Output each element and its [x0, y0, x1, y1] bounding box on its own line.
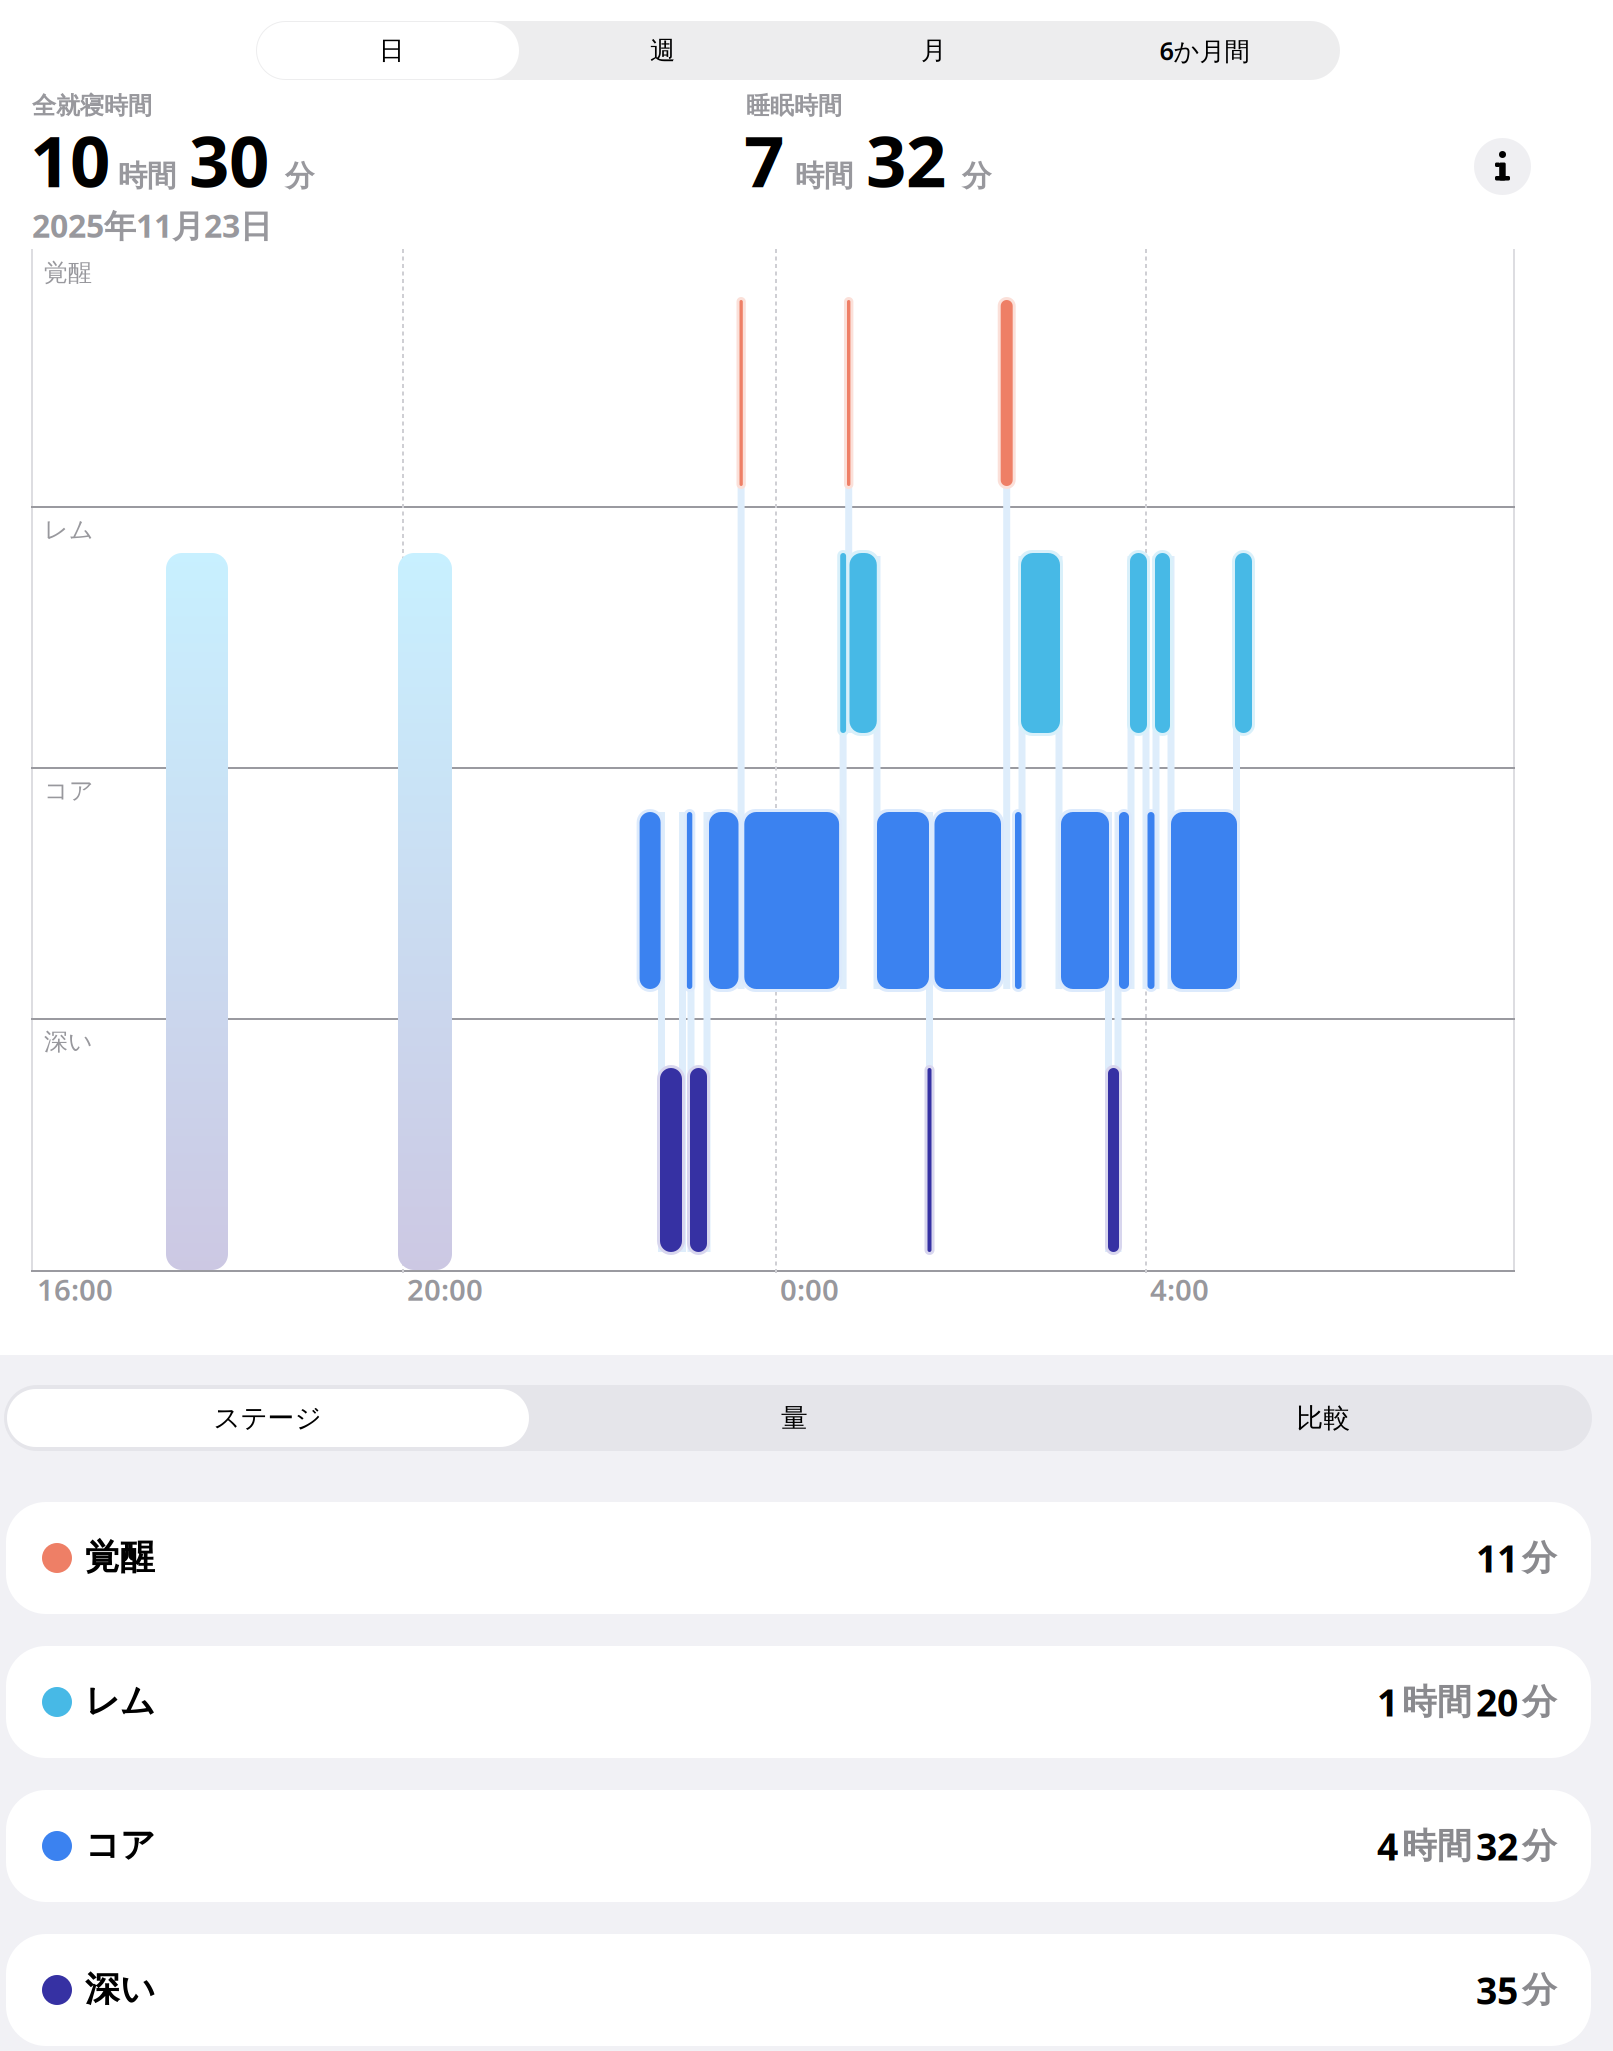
staticText: レム — [85, 1680, 155, 1723]
button[interactable]: 量 — [530, 1385, 1059, 1451]
staticText: 32 — [1476, 1821, 1518, 1871]
staticText: 睡眠時間 — [746, 91, 842, 120]
button[interactable]: 月 — [798, 21, 1069, 80]
staticText: 時間 — [1402, 1825, 1472, 1867]
staticText: 時間 — [795, 158, 853, 194]
staticText: 分 — [1522, 1537, 1557, 1579]
staticText: 4 — [1377, 1821, 1398, 1871]
button[interactable]: レム — [6, 1646, 1591, 1758]
staticText: 日 — [379, 35, 404, 66]
staticText: ステージ — [213, 1402, 321, 1434]
staticText: 0:00 — [780, 1270, 839, 1309]
staticText: 20 — [1476, 1677, 1518, 1727]
staticText: 16:00 — [37, 1270, 113, 1309]
button[interactable]: 週 — [527, 21, 798, 80]
staticText: 時間 — [1402, 1681, 1472, 1723]
staticText: 11 — [1476, 1533, 1518, 1583]
staticText: 7 — [744, 113, 784, 207]
button[interactable]: 詳細情報 — [1474, 138, 1531, 195]
staticText: 35 — [1476, 1965, 1518, 2015]
staticText: 20:00 — [407, 1270, 483, 1309]
staticText: 分 — [1522, 1681, 1557, 1723]
staticText: 10 — [30, 113, 110, 207]
staticText: 比較 — [1296, 1402, 1350, 1434]
staticText: コア — [44, 776, 94, 805]
staticText: 32 — [866, 113, 946, 207]
staticText: 量 — [781, 1402, 808, 1434]
staticText: 月 — [921, 35, 946, 66]
staticText: 分 — [1522, 1825, 1557, 1867]
staticText: 30 — [189, 113, 269, 207]
button[interactable]: 6か月間 — [1069, 21, 1340, 80]
staticText: 2025年11月23日 — [32, 204, 272, 246]
button[interactable]: コア — [6, 1790, 1591, 1902]
staticText: 覚醒 — [44, 258, 92, 287]
staticText: 時間 — [118, 158, 176, 194]
staticText: 深い — [85, 1968, 155, 2011]
button[interactable]: 比較 — [1059, 1385, 1588, 1451]
staticText: 覚醒 — [85, 1536, 155, 1579]
staticText: 分 — [285, 158, 314, 194]
button[interactable]: 覚醒 — [6, 1502, 1591, 1614]
staticText: 全就寝時間 — [32, 91, 152, 120]
staticText: 週 — [650, 35, 675, 66]
staticText: 深い — [44, 1027, 93, 1056]
staticText: 分 — [1522, 1969, 1557, 2011]
button[interactable]: ステージ — [5, 1385, 530, 1451]
staticText: レム — [44, 515, 94, 544]
staticText: 4:00 — [1150, 1270, 1209, 1309]
staticText: 分 — [962, 158, 991, 194]
staticText: 1 — [1377, 1677, 1398, 1727]
button[interactable]: 日 — [256, 21, 527, 80]
staticText: コア — [85, 1824, 155, 1867]
button[interactable]: 深い — [6, 1934, 1591, 2046]
staticText: 6か月間 — [1159, 34, 1249, 67]
